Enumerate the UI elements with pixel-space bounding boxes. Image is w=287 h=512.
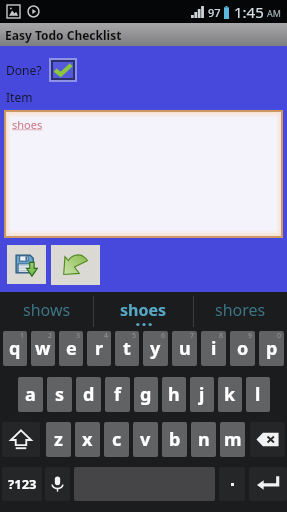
staticText: ?123 <box>8 475 37 493</box>
staticText: w <box>35 336 51 361</box>
staticText: h <box>168 382 180 407</box>
button[interactable]: j <box>190 377 214 412</box>
staticText: b <box>169 427 181 452</box>
button[interactable]: c <box>104 422 129 457</box>
button[interactable]: x <box>75 422 100 457</box>
button[interactable]: g <box>134 377 158 412</box>
button[interactable] <box>53 62 73 78</box>
staticText: shoes <box>12 117 43 132</box>
staticText: shoes <box>120 299 167 321</box>
button[interactable]: n <box>191 422 216 457</box>
staticText: l <box>255 382 261 407</box>
button[interactable]: h <box>162 377 186 412</box>
staticText: Done? <box>6 62 42 78</box>
button[interactable]: y <box>143 331 168 366</box>
button[interactable]: m <box>220 422 245 457</box>
staticText: 6 <box>161 331 166 341</box>
staticText: f <box>114 382 121 407</box>
staticText: g <box>140 382 152 407</box>
button[interactable]: shoes <box>94 292 193 331</box>
button[interactable]: Voice input <box>45 467 70 501</box>
button[interactable]: r <box>87 331 111 366</box>
button[interactable]: Shift <box>2 422 40 457</box>
staticText: q <box>9 336 21 361</box>
button[interactable]: i <box>201 331 226 366</box>
staticText: t <box>123 336 131 361</box>
button[interactable]: v <box>133 422 158 457</box>
staticText: a <box>25 382 36 407</box>
button[interactable]: l <box>246 377 270 412</box>
staticText: e <box>66 336 77 361</box>
staticText: u <box>179 336 191 361</box>
button[interactable]: w <box>31 331 55 366</box>
staticText: 2 <box>48 331 53 341</box>
staticText: 0 <box>277 331 282 341</box>
staticText: 8 <box>219 331 224 341</box>
staticText: d <box>83 382 95 407</box>
button[interactable]: ?123 <box>2 467 42 501</box>
staticText: Item <box>6 89 33 105</box>
staticText: c <box>112 427 122 452</box>
button[interactable]: s <box>47 377 72 412</box>
button[interactable]: f <box>105 377 130 412</box>
button[interactable]: k <box>218 377 242 412</box>
staticText: n <box>198 427 210 452</box>
button[interactable]: shows <box>0 292 93 331</box>
staticText: shores <box>215 299 266 321</box>
button[interactable]: d <box>76 377 101 412</box>
staticText: x <box>82 427 93 452</box>
staticText: s <box>55 382 65 407</box>
button[interactable]: z <box>46 422 71 457</box>
button[interactable]: shores <box>194 292 287 331</box>
button[interactable]: p <box>259 331 284 366</box>
staticText: 4 <box>104 331 109 341</box>
button[interactable]: t <box>115 331 139 366</box>
staticText: 97 <box>208 5 221 20</box>
staticText: o <box>237 336 249 361</box>
staticText: 1 <box>20 331 25 341</box>
button[interactable]: e <box>59 331 83 366</box>
button[interactable]: Back <box>51 245 100 285</box>
staticText: r <box>95 336 104 361</box>
button[interactable]: u <box>172 331 197 366</box>
staticText: v <box>140 427 151 452</box>
staticText: k <box>224 382 236 407</box>
button[interactable]: Backspace <box>250 422 285 457</box>
staticText: i <box>211 336 217 361</box>
button[interactable]: Save <box>7 245 46 284</box>
staticText: 9 <box>248 331 253 341</box>
staticText: 3 <box>76 331 81 341</box>
staticText: AM <box>267 7 281 19</box>
staticText: shows <box>23 299 71 321</box>
staticText: 5 <box>132 331 137 341</box>
button[interactable]: shoes <box>6 112 281 236</box>
staticText: m <box>224 427 242 452</box>
staticText: p <box>266 336 278 361</box>
staticText: y <box>150 336 161 361</box>
button[interactable]: Enter <box>249 467 287 501</box>
staticText: Easy Todo Checklist <box>5 27 122 43</box>
staticText: 7 <box>190 331 195 341</box>
button[interactable]: a <box>18 377 43 412</box>
button[interactable]: b <box>162 422 187 457</box>
staticText: j <box>199 382 205 407</box>
button[interactable]: o <box>230 331 255 366</box>
staticText: z <box>54 427 63 452</box>
button[interactable] <box>219 467 245 501</box>
button[interactable]: q <box>3 331 27 366</box>
staticText: 1:45 <box>234 2 264 22</box>
